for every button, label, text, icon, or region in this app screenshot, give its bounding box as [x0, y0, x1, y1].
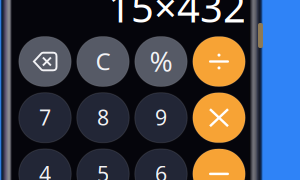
staticText: 15×432	[108, 0, 246, 33]
staticText: 8	[97, 103, 109, 131]
button[interactable]: Multiply	[193, 93, 245, 143]
button[interactable]: Divide	[193, 36, 245, 86]
button[interactable]: 6	[135, 149, 187, 180]
staticText: 7	[39, 103, 51, 131]
button[interactable]: 7	[19, 93, 71, 143]
staticText: 5	[97, 159, 109, 180]
button[interactable]: 9	[135, 93, 187, 143]
button[interactable]: 4	[19, 149, 71, 180]
button[interactable]: 5	[77, 149, 129, 180]
button[interactable]: %	[135, 36, 187, 86]
staticText: 6	[155, 159, 167, 180]
button[interactable]: Delete	[19, 36, 71, 86]
button[interactable]: C	[77, 36, 129, 86]
staticText: 9	[155, 103, 167, 131]
button[interactable]: Subtract	[193, 149, 245, 180]
staticText: %	[149, 42, 172, 80]
button[interactable]: 8	[77, 93, 129, 143]
staticText: C	[95, 45, 110, 77]
staticText: 4	[39, 159, 51, 180]
